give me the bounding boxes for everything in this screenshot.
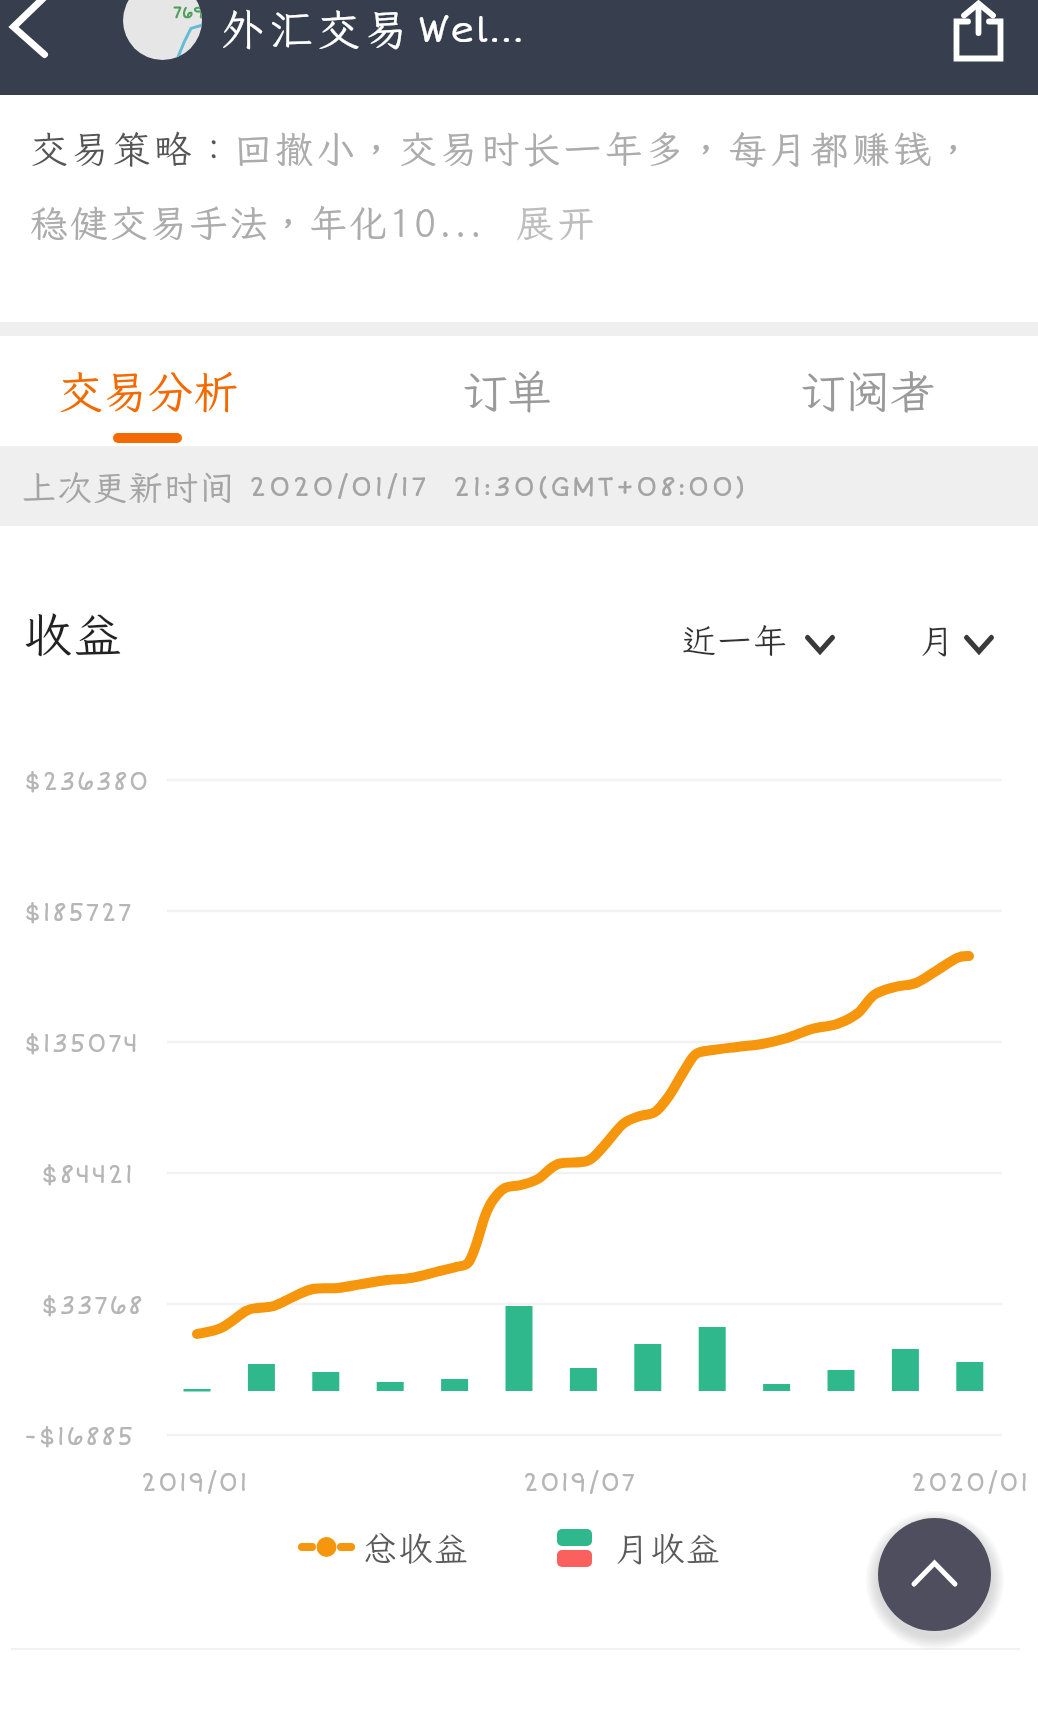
button[interactable]: 总收益 [290, 1514, 480, 1578]
staticText: $84421 [41, 1160, 135, 1191]
button[interactable]: 月 [908, 610, 1008, 674]
button[interactable]: Back [0, 0, 84, 95]
staticText: $236380 [24, 767, 150, 798]
button[interactable]: 订阅者 [800, 362, 936, 421]
staticText: 回撤小，交易时长一年多，每月都赚钱， [234, 124, 976, 174]
staticText: 2020/01/17 21:30(GMT+08:00) [249, 470, 748, 504]
staticText: 月 [920, 618, 956, 663]
staticText: $135074 [24, 1029, 140, 1060]
button[interactable]: Scroll to top [878, 1518, 991, 1631]
staticText: 上次更新时间 [22, 465, 235, 510]
staticText: 2020/01 [911, 1468, 1030, 1499]
staticText: 769% [173, 3, 202, 23]
button[interactable]: 月收益 [548, 1514, 738, 1578]
staticText: 总收益 [363, 1526, 470, 1571]
button[interactable]: 订单 [462, 362, 553, 421]
staticText: $185727 [24, 898, 133, 929]
button[interactable]: 展开 [516, 198, 599, 248]
button[interactable]: Share [934, 0, 1026, 90]
staticText: Wel... [418, 8, 525, 52]
staticText: 外汇交易 [221, 1, 413, 58]
staticText: 近一年 [682, 618, 789, 663]
button[interactable]: 近一年 [670, 610, 846, 674]
staticText: 稳健交易手法，年化10... [30, 198, 485, 248]
staticText: 收益 [24, 602, 125, 665]
staticText: 月收益 [615, 1526, 722, 1571]
staticText: 交易策略： [30, 124, 237, 174]
staticText: -$16885 [24, 1422, 135, 1453]
staticText: 2019/01 [141, 1468, 249, 1499]
staticText: $33768 [41, 1291, 144, 1322]
staticText: 2019/07 [523, 1468, 637, 1499]
button[interactable]: 交易分析 [58, 362, 239, 421]
